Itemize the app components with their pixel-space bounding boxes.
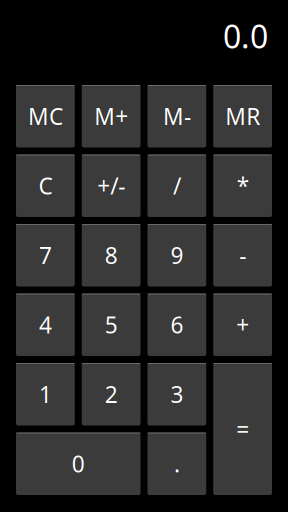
staticText: 7 xyxy=(39,240,52,270)
button[interactable]: 8 xyxy=(82,224,141,286)
button[interactable]: Plus xyxy=(213,293,272,356)
staticText: M+ xyxy=(94,101,128,131)
button[interactable]: Decimal point xyxy=(147,432,206,495)
button[interactable]: MC memory clear xyxy=(16,85,75,147)
staticText: 3 xyxy=(170,379,183,409)
staticText: 0 xyxy=(72,449,85,479)
button[interactable]: 9 xyxy=(147,224,206,286)
button[interactable]: 4 xyxy=(16,293,75,356)
staticText: 6 xyxy=(170,310,183,340)
button[interactable]: 7 xyxy=(16,224,75,286)
button[interactable]: 5 xyxy=(82,293,141,356)
staticText: 1 xyxy=(39,379,52,409)
button[interactable]: 1 xyxy=(16,363,75,425)
button[interactable]: Plus minus sign xyxy=(82,154,141,217)
staticText: C xyxy=(38,171,52,201)
staticText: 9 xyxy=(170,240,183,270)
staticText: MR xyxy=(225,101,260,131)
staticText: 8 xyxy=(105,240,118,270)
staticText: +/- xyxy=(97,171,125,201)
button[interactable]: Equals xyxy=(213,363,272,495)
staticText: + xyxy=(236,310,249,340)
staticText: 4 xyxy=(39,310,52,340)
button[interactable]: 6 xyxy=(147,293,206,356)
staticText: 2 xyxy=(105,379,118,409)
staticText: MC xyxy=(28,101,63,131)
staticText: . xyxy=(174,449,180,479)
staticText: M- xyxy=(163,101,191,131)
staticText: / xyxy=(173,171,181,201)
button[interactable]: 2 xyxy=(82,363,141,425)
button[interactable]: 3 xyxy=(147,363,206,425)
button[interactable]: MR memory recall xyxy=(213,85,272,147)
staticText: * xyxy=(237,171,249,201)
staticText: 0.0 xyxy=(223,15,268,57)
button[interactable]: Multiply xyxy=(213,154,272,217)
button[interactable]: M plus memory add xyxy=(82,85,141,147)
button[interactable]: 0 xyxy=(16,432,140,495)
staticText: = xyxy=(236,414,249,444)
staticText: - xyxy=(239,240,246,270)
button[interactable]: Minus xyxy=(213,224,272,286)
button[interactable]: M minus memory subtract xyxy=(147,85,206,147)
staticText: 5 xyxy=(105,310,118,340)
button[interactable]: Divide xyxy=(147,154,206,217)
button[interactable]: C clear xyxy=(16,154,75,217)
